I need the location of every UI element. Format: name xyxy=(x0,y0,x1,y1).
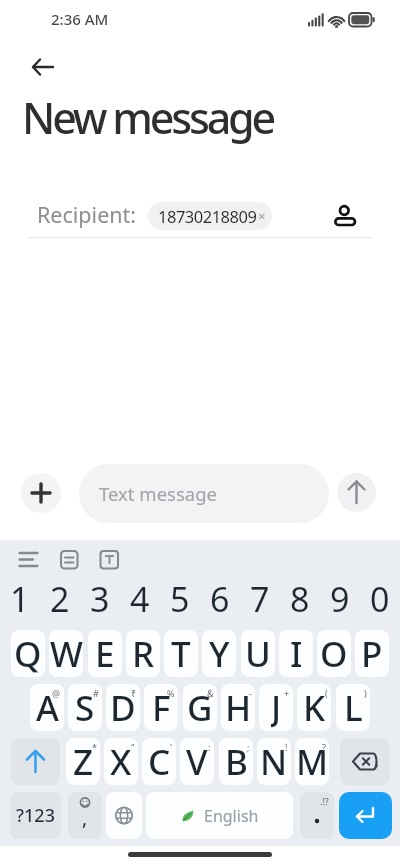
button[interactable] xyxy=(328,194,366,238)
button[interactable]: V xyxy=(180,738,214,785)
staticText: Text message xyxy=(99,481,217,506)
button[interactable]: 4 xyxy=(120,576,160,622)
staticText: : xyxy=(208,741,211,753)
staticText: " xyxy=(131,741,135,753)
button[interactable]: .!? xyxy=(300,792,334,839)
button[interactable]: 9 xyxy=(320,576,360,622)
button[interactable]: O xyxy=(317,630,351,677)
button[interactable]: F xyxy=(144,684,178,731)
staticText: S xyxy=(75,684,95,731)
button[interactable] xyxy=(12,544,48,576)
button[interactable] xyxy=(340,738,390,785)
button[interactable]: I xyxy=(279,630,313,677)
staticText: Y xyxy=(209,630,230,677)
staticText: F xyxy=(152,684,171,731)
button[interactable]: 8 xyxy=(280,576,320,622)
staticText: & xyxy=(207,687,214,699)
button[interactable]: N xyxy=(257,738,291,785)
staticText: R xyxy=(132,630,155,677)
staticText: K xyxy=(303,684,326,731)
staticText: I xyxy=(290,630,303,677)
button[interactable]: 6 xyxy=(200,576,240,622)
button[interactable]: 3 xyxy=(80,576,120,622)
staticText: English xyxy=(204,805,259,827)
staticText: J xyxy=(271,684,282,731)
staticText: 0 xyxy=(370,576,390,622)
button[interactable]: T xyxy=(164,630,198,677)
button[interactable]: 1 xyxy=(0,576,40,622)
staticText: B xyxy=(225,738,248,785)
button[interactable] xyxy=(339,792,392,839)
button[interactable]: 2 xyxy=(40,576,80,622)
button[interactable]: W xyxy=(49,630,83,677)
button[interactable]: Text message xyxy=(79,464,329,523)
button[interactable] xyxy=(11,738,60,785)
staticText: Z xyxy=(73,738,94,785)
staticText: M xyxy=(296,738,329,785)
staticText: ? xyxy=(322,741,326,753)
staticText: ) xyxy=(364,687,367,699)
button[interactable]: English xyxy=(146,792,293,839)
staticText: 2 xyxy=(50,576,70,622)
staticText: 9 xyxy=(330,576,350,622)
button[interactable]: S xyxy=(68,684,102,731)
button[interactable]: K xyxy=(297,684,331,731)
button[interactable]: G xyxy=(183,684,217,731)
staticText: T xyxy=(171,630,191,677)
staticText: A xyxy=(36,684,59,731)
button[interactable]: C xyxy=(142,738,176,785)
staticText: W xyxy=(50,630,83,677)
button[interactable]: X xyxy=(104,738,138,785)
staticText: V xyxy=(186,738,208,785)
staticText: ; xyxy=(247,741,250,753)
button[interactable]: E xyxy=(88,630,122,677)
button[interactable]: , xyxy=(68,792,102,839)
button[interactable] xyxy=(106,792,142,839)
button[interactable]: A xyxy=(30,684,64,731)
button[interactable]: P xyxy=(355,630,389,677)
button[interactable]: 7 xyxy=(240,576,280,622)
staticText: 5 xyxy=(170,576,190,622)
staticText: ' xyxy=(170,741,173,753)
staticText: L xyxy=(344,684,363,731)
button[interactable]: R xyxy=(126,630,160,677)
button[interactable] xyxy=(55,544,85,576)
button[interactable]: Q xyxy=(11,630,45,677)
button[interactable]: L xyxy=(336,684,370,731)
staticText: ( xyxy=(325,687,328,699)
staticText: % xyxy=(167,687,175,699)
button[interactable]: D xyxy=(106,684,140,731)
staticText: New message xyxy=(22,88,274,147)
staticText: 3 xyxy=(90,576,110,622)
staticText: + xyxy=(284,687,290,699)
button[interactable]: J xyxy=(259,684,293,731)
staticText: X xyxy=(110,738,132,785)
button[interactable]: ?123 xyxy=(10,792,61,839)
button[interactable] xyxy=(22,52,62,82)
staticText: - xyxy=(249,687,252,699)
button[interactable]: 0 xyxy=(360,576,400,622)
staticText: × xyxy=(258,207,266,225)
staticText: * xyxy=(92,741,97,753)
button[interactable]: Y xyxy=(202,630,236,677)
button[interactable]: B xyxy=(219,738,253,785)
button[interactable] xyxy=(95,544,125,576)
staticText: .!? xyxy=(320,795,329,807)
staticText: 1 xyxy=(10,576,30,622)
button[interactable]: Z xyxy=(66,738,100,785)
button[interactable]: U xyxy=(241,630,275,677)
button[interactable] xyxy=(337,473,376,512)
staticText: 7 xyxy=(250,576,270,622)
button[interactable] xyxy=(21,473,61,513)
staticText: C xyxy=(148,738,171,785)
staticText: ! xyxy=(285,741,288,753)
staticText: D xyxy=(110,684,136,731)
button[interactable]: M xyxy=(295,738,329,785)
staticText: G xyxy=(187,684,213,731)
staticText: 8 xyxy=(290,576,310,622)
staticText: O xyxy=(320,630,348,677)
button[interactable]: H xyxy=(221,684,255,731)
button[interactable]: 18730218809 xyxy=(148,202,272,230)
staticText: H xyxy=(225,684,252,731)
button[interactable]: 5 xyxy=(160,576,200,622)
